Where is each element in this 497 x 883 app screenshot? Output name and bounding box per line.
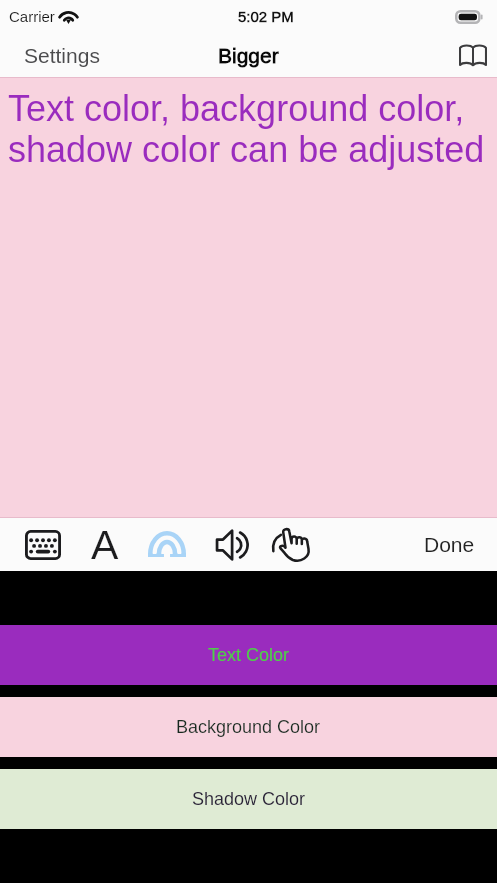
staticText: Carrier bbox=[9, 8, 55, 25]
button[interactable]: Settings bbox=[0, 33, 112, 77]
button[interactable]: Touch bbox=[260, 518, 322, 571]
button[interactable]: Font size bbox=[74, 518, 136, 571]
button[interactable]: Done bbox=[424, 518, 475, 571]
button[interactable]: Text Color bbox=[0, 625, 497, 685]
button[interactable]: Reading mode bbox=[449, 33, 497, 77]
staticText: Background Color bbox=[176, 717, 321, 737]
staticText: Done bbox=[424, 533, 475, 556]
button[interactable]: Keyboard bbox=[12, 518, 74, 571]
staticText: A bbox=[91, 522, 119, 568]
staticText: Text Color bbox=[208, 645, 290, 665]
button[interactable]: Speak bbox=[198, 518, 260, 571]
staticText: 5:02 PM bbox=[238, 8, 294, 25]
staticText: Shadow Color bbox=[192, 789, 306, 809]
staticText: Settings bbox=[24, 44, 100, 67]
button[interactable]: Background Color bbox=[0, 697, 497, 757]
staticText: Text color, background color, shadow col… bbox=[8, 88, 491, 169]
staticText: Bigger bbox=[218, 44, 279, 67]
button[interactable]: Shadow Color bbox=[0, 769, 497, 829]
button[interactable]: Colors bbox=[136, 518, 198, 571]
